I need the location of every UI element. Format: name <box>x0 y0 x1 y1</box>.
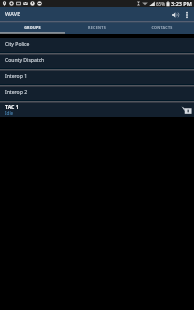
button[interactable]: TAC 1 <box>0 103 194 117</box>
button[interactable]: Volume <box>170 8 181 21</box>
staticText: City Police <box>5 41 30 48</box>
button[interactable]: GROUPS <box>0 23 64 32</box>
staticText: Idle <box>5 110 14 116</box>
button[interactable]: City Police <box>0 39 194 55</box>
staticText: 3:23 PM <box>171 0 192 7</box>
staticText: CONTACTS <box>151 25 173 30</box>
staticText: RECENTS <box>88 25 106 30</box>
staticText: TAC 1 <box>5 103 19 110</box>
button[interactable]: CONTACTS <box>129 23 194 32</box>
staticText: Interop 2 <box>5 89 28 96</box>
staticText: Interop 1 <box>5 73 28 80</box>
button[interactable]: Speaker <box>180 104 192 116</box>
staticText: County Dispatch <box>5 57 45 64</box>
staticText: GROUPS <box>24 25 41 30</box>
button[interactable]: County Dispatch <box>0 55 194 71</box>
button[interactable]: Interop 2 <box>0 87 194 103</box>
button[interactable]: Interop 1 <box>0 71 194 87</box>
button[interactable]: More options <box>181 8 192 21</box>
staticText: 65% <box>156 1 165 7</box>
button[interactable]: RECENTS <box>64 23 129 32</box>
staticText: WAVE <box>5 10 21 17</box>
